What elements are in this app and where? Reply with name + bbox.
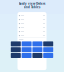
staticText: and Tables [24,5,40,9]
staticText: Easily view Orders [19,2,45,5]
